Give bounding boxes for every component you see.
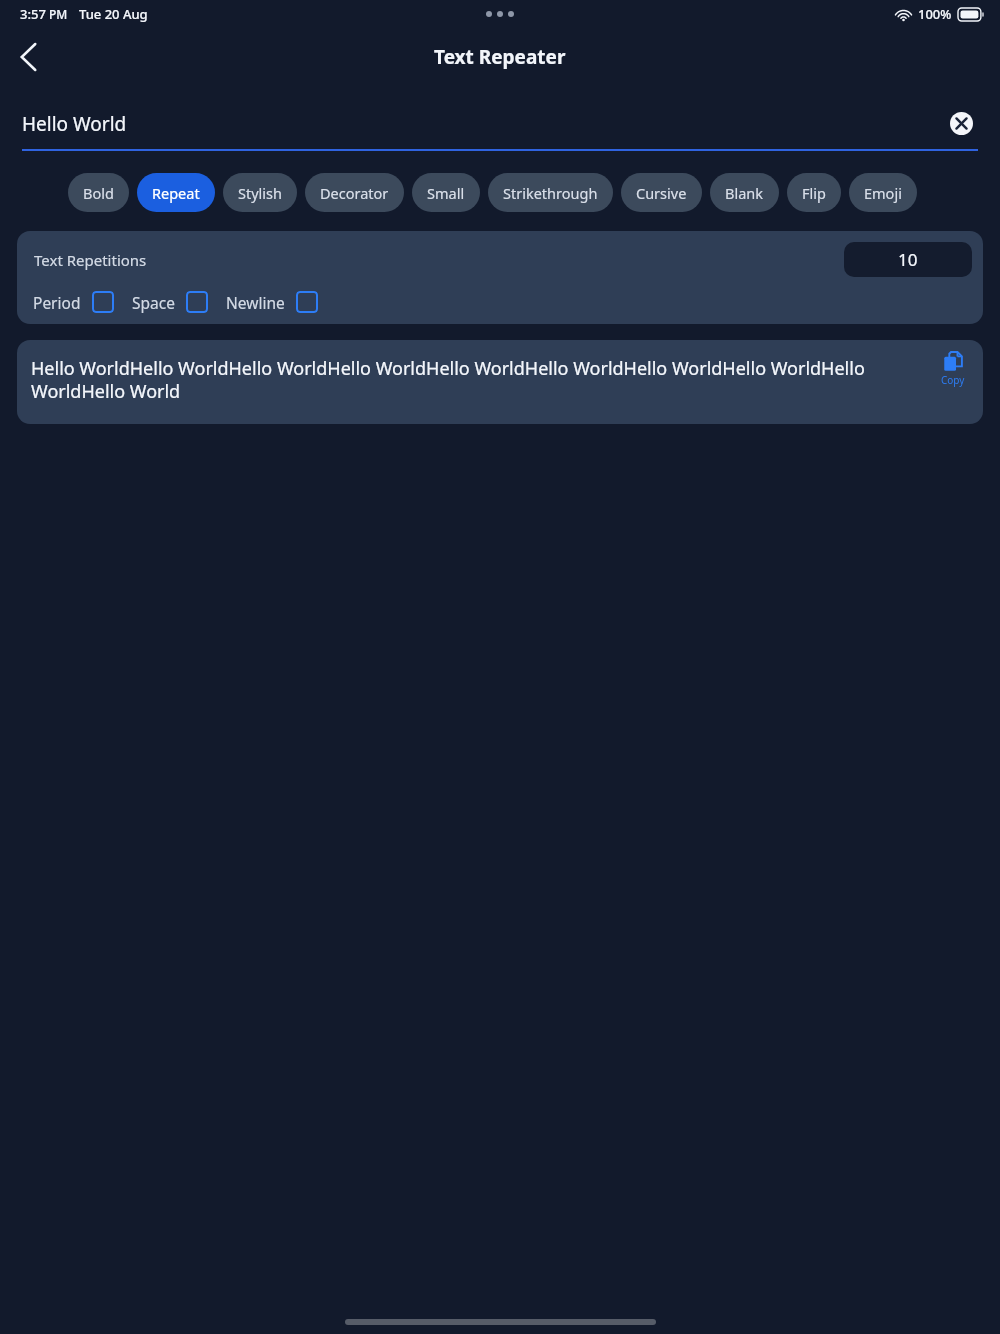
staticText: Blank	[725, 183, 764, 203]
staticText: Period	[33, 292, 81, 313]
button[interactable]: Copy	[923, 340, 983, 424]
button[interactable]: Bold	[68, 173, 129, 212]
button[interactable]: Clear text	[944, 107, 978, 140]
staticText: Decorator	[320, 183, 389, 203]
staticText: 3:57	[20, 5, 46, 23]
staticText: Text Repetitions	[34, 250, 147, 270]
button[interactable]: 10	[844, 242, 972, 277]
button[interactable]: Cursive	[621, 173, 702, 212]
staticText: Newline	[226, 292, 285, 313]
button[interactable]: Strikethrough	[488, 173, 613, 212]
staticText: 100%	[918, 5, 952, 23]
staticText: Strikethrough	[503, 183, 598, 203]
button[interactable]: Stylish	[223, 173, 297, 212]
staticText: Small	[427, 183, 465, 203]
button[interactable]: Newline	[226, 291, 318, 313]
staticText: Space	[132, 292, 175, 313]
staticText: Repeat	[152, 183, 200, 203]
staticText: Emoji	[864, 183, 902, 203]
staticText: Hello WorldHello WorldHello WorldHello W…	[31, 356, 919, 403]
button[interactable]: Repeat	[137, 173, 215, 212]
button[interactable]: Period	[33, 291, 114, 313]
button[interactable]: Decorator	[305, 173, 404, 212]
staticText: Cursive	[636, 183, 687, 203]
button[interactable]: Flip	[787, 173, 841, 212]
staticText: PM	[49, 6, 68, 22]
button[interactable]: Emoji	[849, 173, 917, 212]
button[interactable]: Space	[132, 291, 208, 313]
staticText: Hello World	[22, 111, 127, 137]
staticText: Flip	[802, 183, 826, 203]
button[interactable]: Blank	[710, 173, 779, 212]
staticText: Text Repeater	[434, 44, 566, 70]
staticText: 10	[898, 248, 918, 271]
staticText: Stylish	[238, 183, 282, 203]
staticText: Tue 20 Aug	[79, 5, 148, 23]
staticText: Copy	[941, 373, 965, 387]
button[interactable]: Small	[412, 173, 480, 212]
button[interactable]: Back	[6, 35, 50, 79]
staticText: Bold	[83, 183, 114, 203]
